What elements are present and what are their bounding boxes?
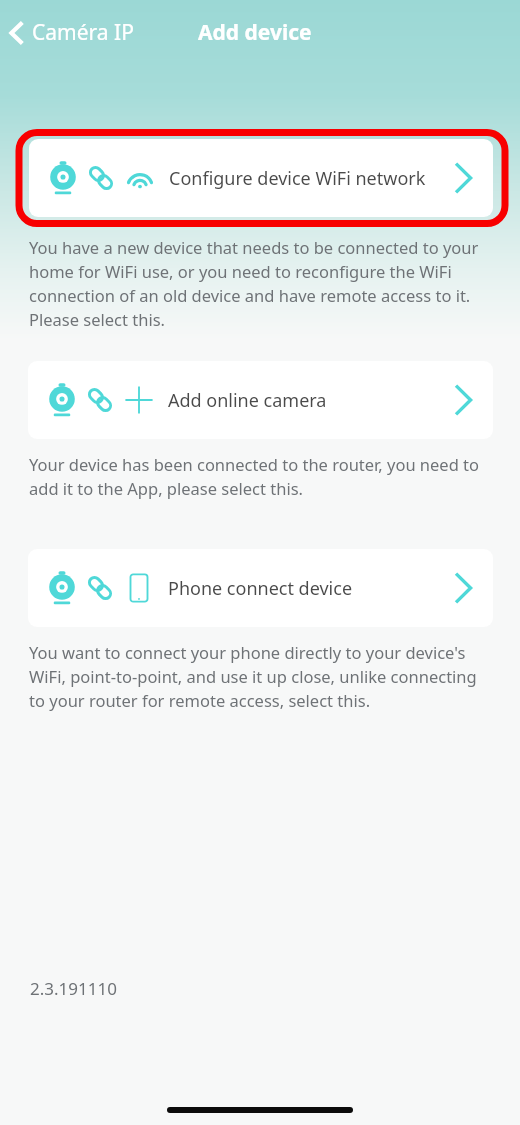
staticText: Add device: [198, 18, 312, 47]
button[interactable]: Phone connect device: [28, 549, 493, 627]
button[interactable]: Back: [0, 14, 144, 51]
other: Open Add online camera: [453, 382, 473, 418]
button[interactable]: Configure device WiFi network: [29, 139, 493, 217]
other: Open Configure device WiFi network: [453, 160, 473, 196]
other: Open Phone connect device: [453, 570, 473, 606]
other: Back: [10, 21, 24, 45]
staticText: You have a new device that needs to be c…: [29, 236, 494, 331]
staticText: Add online camera: [168, 388, 453, 413]
staticText: You want to connect your phone directly …: [29, 641, 494, 712]
button[interactable]: Add online camera: [28, 361, 493, 439]
staticText: Your device has been connected to the ro…: [29, 453, 494, 500]
staticText: Configure device WiFi network: [169, 166, 453, 191]
staticText: Phone connect device: [168, 576, 453, 601]
staticText: Caméra IP: [32, 18, 134, 47]
staticText: 2.3.191110: [30, 977, 117, 1000]
